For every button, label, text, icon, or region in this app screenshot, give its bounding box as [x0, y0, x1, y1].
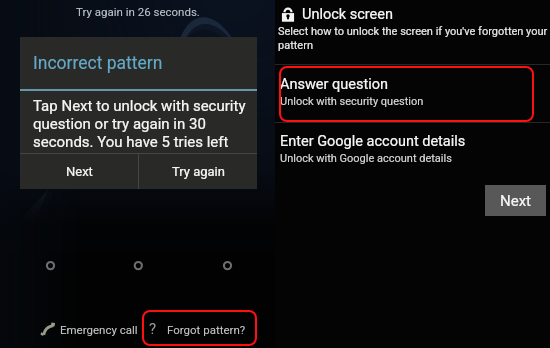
other: Lock [280, 7, 296, 23]
staticText: Answer question [280, 76, 388, 93]
staticText: Incorrect pattern [33, 53, 163, 74]
staticText: Unlock screen [302, 6, 393, 23]
button[interactable]: Enter Google account details [275, 123, 550, 179]
button[interactable]: Next [485, 185, 546, 216]
staticText: Forgot pattern? [167, 323, 246, 336]
staticText: ? [149, 320, 157, 338]
button[interactable]: ? [149, 314, 246, 344]
button[interactable]: Emergency call [41, 314, 138, 344]
staticText: Tap Next to unlock with security questio… [33, 97, 251, 151]
staticText: Emergency call [60, 323, 138, 336]
other: Emergency call [41, 322, 55, 336]
staticText: Select how to unlock the screen if you'v… [278, 25, 550, 51]
staticText: Next [500, 192, 532, 210]
staticText: Try again in 26 seconds. [76, 5, 200, 18]
staticText: Next [66, 164, 93, 179]
button[interactable]: Try again [139, 154, 257, 189]
staticText: Unlock with security question [280, 95, 424, 108]
button[interactable]: Next [20, 154, 138, 189]
staticText: Try again [172, 164, 225, 179]
staticText: Unlock with Google account details [280, 152, 452, 165]
staticText: Enter Google account details [280, 133, 466, 150]
button[interactable]: Answer question [275, 65, 550, 122]
